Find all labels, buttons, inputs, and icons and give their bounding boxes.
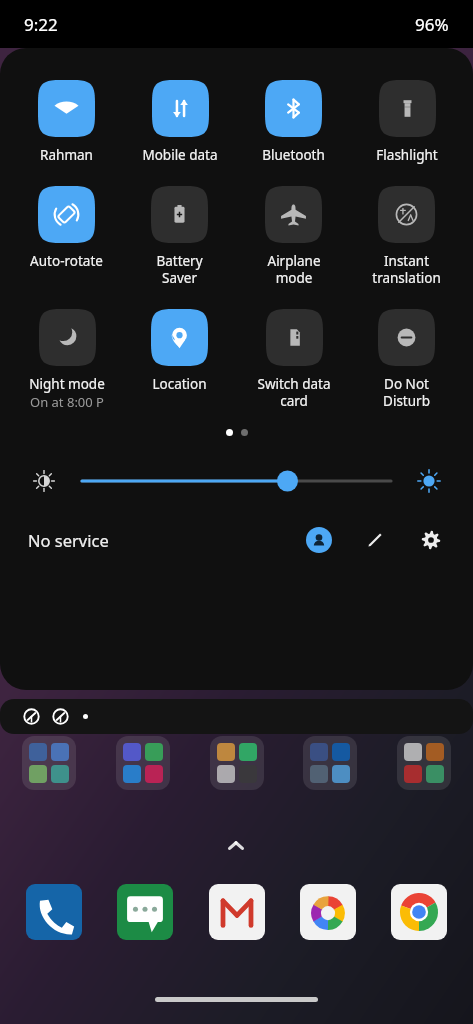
button[interactable]: Edit tiles xyxy=(355,520,395,560)
button[interactable]: Instant translation xyxy=(372,186,441,287)
button[interactable]: Airplane mode xyxy=(265,186,322,287)
staticText: Switch data card xyxy=(257,375,331,410)
staticText: Airplane mode xyxy=(267,252,321,287)
staticText: Location xyxy=(152,375,207,393)
button[interactable] xyxy=(402,741,446,785)
button[interactable]: Location xyxy=(151,309,208,393)
button[interactable] xyxy=(27,741,71,785)
button[interactable] xyxy=(300,884,356,940)
button[interactable]: Open app drawer xyxy=(222,832,250,860)
button[interactable] xyxy=(26,884,82,940)
staticText: 9:22 xyxy=(24,13,58,36)
button[interactable]: User xyxy=(299,520,339,560)
button[interactable]: Brightness xyxy=(24,461,64,501)
button[interactable]: Mobile data xyxy=(142,80,218,164)
button[interactable]: Do Not Disturb xyxy=(378,309,435,410)
staticText: Battery Saver xyxy=(156,252,203,287)
button[interactable]: Night mode xyxy=(29,309,105,411)
button[interactable] xyxy=(82,466,391,496)
button[interactable] xyxy=(121,741,165,785)
button[interactable] xyxy=(117,884,173,940)
staticText: On at 8:00 P xyxy=(30,393,104,411)
staticText: 96% xyxy=(415,13,449,36)
button[interactable]: Battery Saver xyxy=(151,186,208,287)
staticText: Mobile data xyxy=(142,146,218,164)
button[interactable]: Rahman xyxy=(38,80,95,164)
button[interactable] xyxy=(308,741,352,785)
staticText: Night mode xyxy=(29,375,105,393)
button[interactable] xyxy=(0,699,473,734)
button[interactable]: Switch data card xyxy=(257,309,331,410)
button[interactable]: Bluetooth xyxy=(262,80,325,164)
staticText: Auto-rotate xyxy=(30,252,103,270)
button[interactable]: Auto brightness xyxy=(409,461,449,501)
staticText: Rahman xyxy=(40,146,93,164)
button[interactable] xyxy=(215,741,259,785)
button[interactable] xyxy=(209,884,265,940)
button[interactable]: Settings xyxy=(411,520,451,560)
button[interactable] xyxy=(391,884,447,940)
staticText: Flashlight xyxy=(376,146,438,164)
button[interactable]: Auto-rotate xyxy=(30,186,103,270)
staticText: Bluetooth xyxy=(262,146,325,164)
button[interactable]: Flashlight xyxy=(376,80,438,164)
staticText: Instant translation xyxy=(372,252,441,287)
staticText: Do Not Disturb xyxy=(383,375,430,410)
button[interactable]: No service xyxy=(28,529,109,551)
